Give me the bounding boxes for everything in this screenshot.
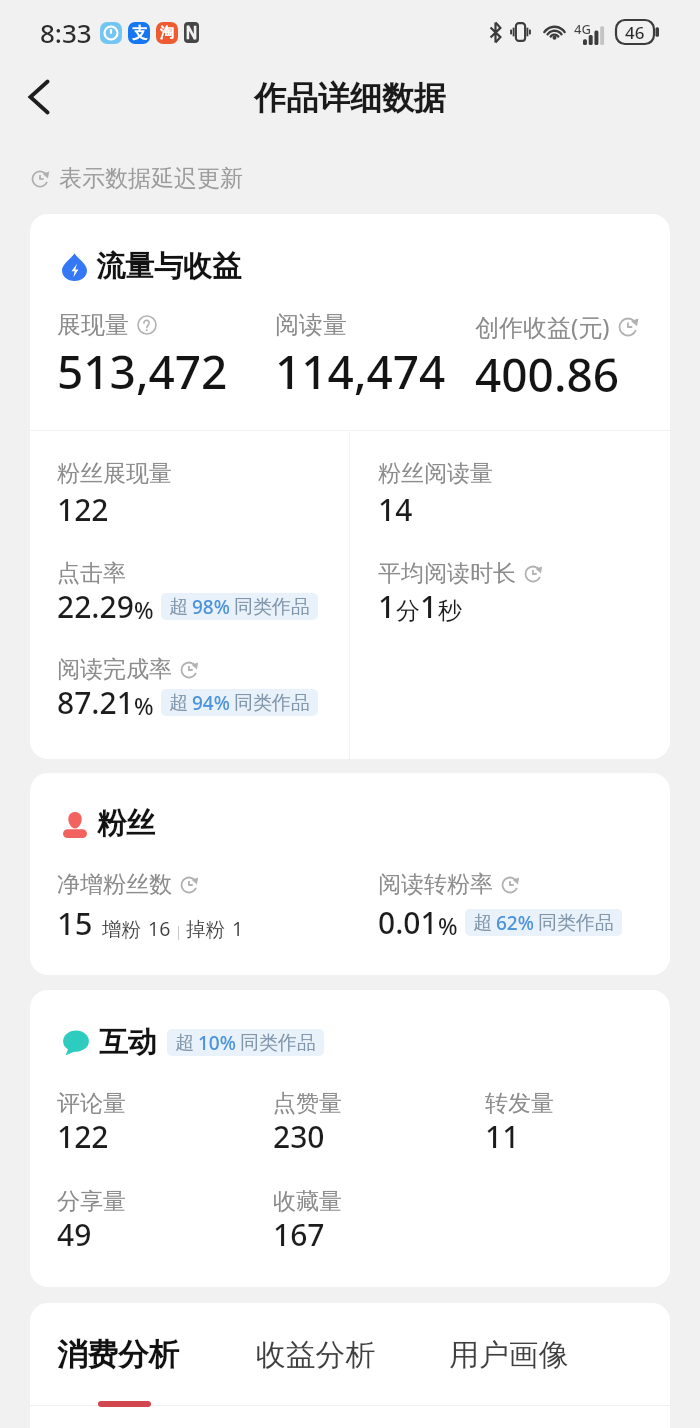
staticText: 支 [132, 24, 147, 43]
button[interactable]: 收益分析 [256, 1336, 376, 1401]
staticText: 1 [420, 586, 438, 627]
staticText: 230 [273, 1116, 325, 1157]
staticText: 创作收益(元) [475, 310, 610, 343]
staticText: 平均阅读时长 [378, 559, 516, 588]
button[interactable]: 收藏量 [273, 1187, 342, 1257]
staticText: 评论量 [57, 1089, 126, 1118]
staticText: 超 [169, 691, 188, 715]
staticText: 同类作品 [240, 1031, 316, 1055]
button[interactable]: 创作收益(元) [475, 310, 638, 406]
staticText: 49 [57, 1214, 92, 1255]
staticText: 粉丝阅读量 [378, 459, 493, 488]
button[interactable]: 评论量 [57, 1089, 126, 1159]
button[interactable]: 用户画像 [449, 1336, 569, 1401]
staticText: 8:33 [40, 15, 92, 50]
staticText: 15 [57, 902, 93, 944]
staticText: 分享量 [57, 1187, 126, 1216]
button[interactable]: 阅读量 [275, 310, 446, 403]
staticText: 114,474 [275, 340, 446, 403]
button[interactable]: 表示数据延迟更新 [31, 164, 243, 193]
button[interactable]: 转发量 [485, 1089, 554, 1159]
staticText: 粉丝 [97, 805, 155, 842]
staticText: 同类作品 [234, 595, 310, 619]
staticText: 互动 [99, 1024, 157, 1061]
staticText: 净增粉丝数 [57, 870, 172, 899]
staticText: 98% [192, 594, 230, 620]
staticText: 秒 [438, 596, 462, 626]
staticText: 11 [485, 1116, 520, 1157]
staticText: 0.01 [378, 902, 438, 943]
button[interactable]: 互动 [62, 1024, 324, 1061]
button[interactable]: Back [13, 71, 65, 123]
staticText: % [134, 594, 154, 625]
staticText: % [438, 910, 458, 941]
button[interactable]: 分享量 [57, 1187, 126, 1257]
staticText: 点赞量 [273, 1089, 342, 1118]
staticText: 16 [148, 915, 171, 942]
staticText: 513,472 [57, 340, 228, 403]
staticText: 同类作品 [234, 691, 310, 715]
staticText: 粉丝展现量 [57, 459, 172, 488]
staticText: 10% [198, 1030, 236, 1056]
staticText: 87.21 [57, 682, 134, 723]
staticText: 400.86 [475, 343, 620, 406]
staticText: 流量与收益 [96, 248, 241, 285]
staticText: 22.29 [57, 586, 134, 627]
staticText: % [134, 690, 154, 721]
staticText: 分 [396, 596, 420, 626]
staticText: 167 [273, 1214, 325, 1255]
staticText: 增粉 [102, 917, 141, 942]
staticText: 收益分析 [256, 1336, 376, 1374]
staticText: 1 [378, 586, 396, 627]
button[interactable]: 点赞量 [273, 1089, 342, 1159]
staticText: 转发量 [485, 1089, 554, 1118]
button[interactable]: 粉丝 [62, 805, 155, 842]
staticText: 14 [378, 489, 413, 530]
staticText: 用户画像 [449, 1336, 569, 1374]
staticText: 作品详细数据 [254, 78, 446, 118]
staticText: 掉粉 [186, 917, 225, 942]
staticText: 4G [574, 20, 591, 38]
staticText: 淘 [160, 24, 174, 42]
staticText: 阅读完成率 [57, 655, 172, 684]
staticText: 1 [232, 915, 244, 942]
staticText: 超 [473, 911, 492, 935]
staticText: 超 [169, 595, 188, 619]
staticText: 收藏量 [273, 1187, 342, 1216]
staticText: 点击率 [57, 559, 126, 588]
staticText: 阅读量 [275, 310, 347, 340]
staticText: 94% [192, 690, 230, 716]
staticText: 消费分析 [57, 1336, 179, 1374]
staticText: 同类作品 [538, 911, 614, 935]
staticText: 展现量 [57, 310, 129, 340]
staticText: 122 [57, 1116, 109, 1157]
staticText: 62% [496, 910, 534, 936]
staticText: 超 [175, 1031, 194, 1055]
staticText: 122 [57, 489, 109, 530]
button[interactable]: 展现量 [57, 310, 228, 403]
staticText: 46 [625, 21, 645, 44]
staticText: 阅读转粉率 [378, 870, 493, 899]
staticText: 表示数据延迟更新 [59, 164, 243, 193]
button[interactable]: 流量与收益 [62, 248, 241, 285]
button[interactable]: 消费分析 [57, 1336, 179, 1407]
